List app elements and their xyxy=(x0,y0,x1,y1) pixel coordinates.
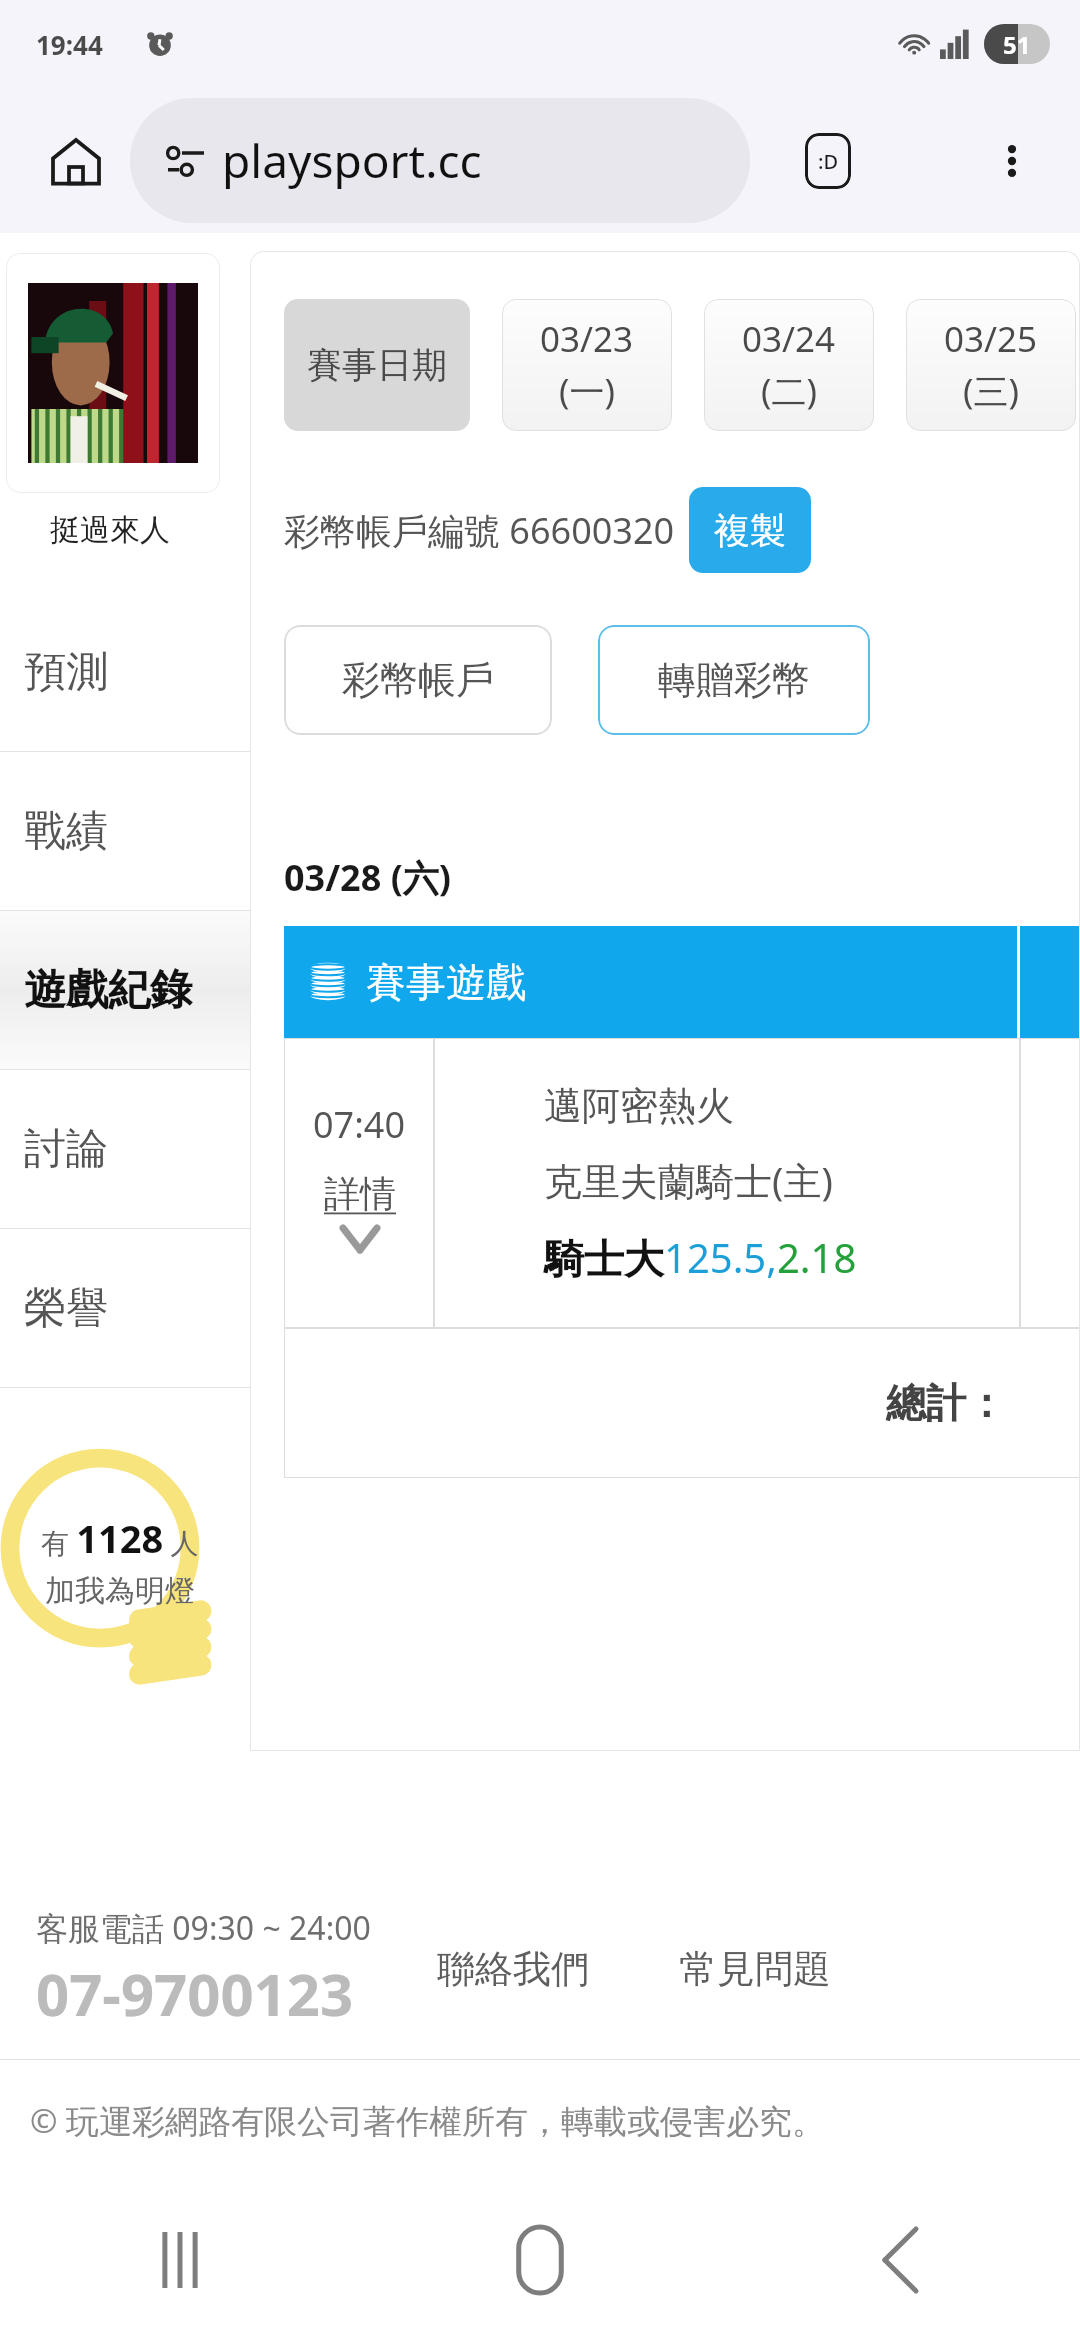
staticText: 07-9700123 xyxy=(36,1954,354,2033)
staticText: 複製 xyxy=(714,508,786,553)
staticText: :D xyxy=(818,148,839,175)
staticText: 遊戲紀錄 xyxy=(24,964,192,1017)
staticText: 常見問題 xyxy=(679,1945,831,1993)
staticText: 19:44 xyxy=(36,27,103,62)
staticText: 彩幣帳戶 xyxy=(342,656,494,704)
staticText: (一) xyxy=(559,367,616,415)
button[interactable]: 聯絡我們 xyxy=(437,1945,589,1993)
staticText: © 玩運彩網路有限公司著作權所有，轉載或侵害必究。 xyxy=(30,2098,826,2143)
staticText: 03/24 xyxy=(742,315,836,363)
staticText: 總計： xyxy=(886,1378,1006,1428)
staticText: 轉贈彩幣 xyxy=(658,656,810,704)
button[interactable]: 戰績 xyxy=(0,752,250,910)
staticText: 挺過來人 xyxy=(50,511,170,549)
staticText: 討論 xyxy=(24,1123,108,1176)
staticText: 有 1128 人 xyxy=(41,1512,199,1564)
staticText: 彩幣帳戶編號 66600320 xyxy=(284,506,675,555)
button[interactable]: Home xyxy=(38,123,114,199)
button[interactable]: 03/23 xyxy=(502,299,672,431)
button[interactable]: 詳情 xyxy=(324,1171,396,1216)
button[interactable]: Recents xyxy=(0,2180,360,2340)
staticText: (三) xyxy=(963,367,1020,415)
button[interactable]: 預測 xyxy=(0,593,250,751)
staticText: 加我為明燈 xyxy=(45,1572,195,1610)
staticText: 戰績 xyxy=(24,805,108,858)
button[interactable]: 有 1128 人 xyxy=(0,1428,250,1728)
button[interactable]: 03/25 xyxy=(906,299,1076,431)
button[interactable]: Home xyxy=(360,2180,720,2340)
staticText: 03/28 (六) xyxy=(284,853,452,902)
staticText: 賽事遊戲 xyxy=(366,957,526,1007)
button[interactable]: 榮譽 xyxy=(0,1229,250,1387)
staticText: 客服電話 09:30 ~ 24:00 xyxy=(36,1906,371,1950)
button[interactable]: 賽事日期 xyxy=(284,299,470,431)
button[interactable]: Tabs xyxy=(790,123,866,199)
staticText: 聯絡我們 xyxy=(437,1945,589,1993)
staticText: 騎士大125.5,2.18 xyxy=(544,1230,857,1285)
button[interactable]: 複製 xyxy=(689,487,811,573)
staticText: 07:40 xyxy=(313,1100,406,1149)
button[interactable]: Back xyxy=(720,2180,1080,2340)
button[interactable]: 常見問題 xyxy=(679,1945,831,1993)
staticText: 榮譽 xyxy=(24,1282,108,1335)
staticText: 51 xyxy=(1003,28,1031,61)
button[interactable]: 03/24 xyxy=(704,299,874,431)
staticText: playsport.cc xyxy=(222,129,482,192)
button[interactable]: 轉贈彩幣 xyxy=(598,625,870,735)
staticText: (二) xyxy=(761,367,818,415)
staticText: 克里夫蘭騎士(主) xyxy=(544,1154,833,1206)
staticText: 03/23 xyxy=(540,315,634,363)
button[interactable]: More options xyxy=(974,123,1050,199)
staticText: 賽事日期 xyxy=(307,343,447,387)
button[interactable]: 彩幣帳戶 xyxy=(284,625,552,735)
button[interactable]: 遊戲紀錄 xyxy=(0,911,250,1069)
button[interactable]: playsport.cc xyxy=(130,98,750,223)
button[interactable]: 討論 xyxy=(0,1070,250,1228)
staticText: 詳情 xyxy=(324,1171,396,1216)
staticText: 03/25 xyxy=(944,315,1038,363)
staticText: 邁阿密熱火 xyxy=(544,1082,734,1130)
staticText: 預測 xyxy=(24,646,108,699)
